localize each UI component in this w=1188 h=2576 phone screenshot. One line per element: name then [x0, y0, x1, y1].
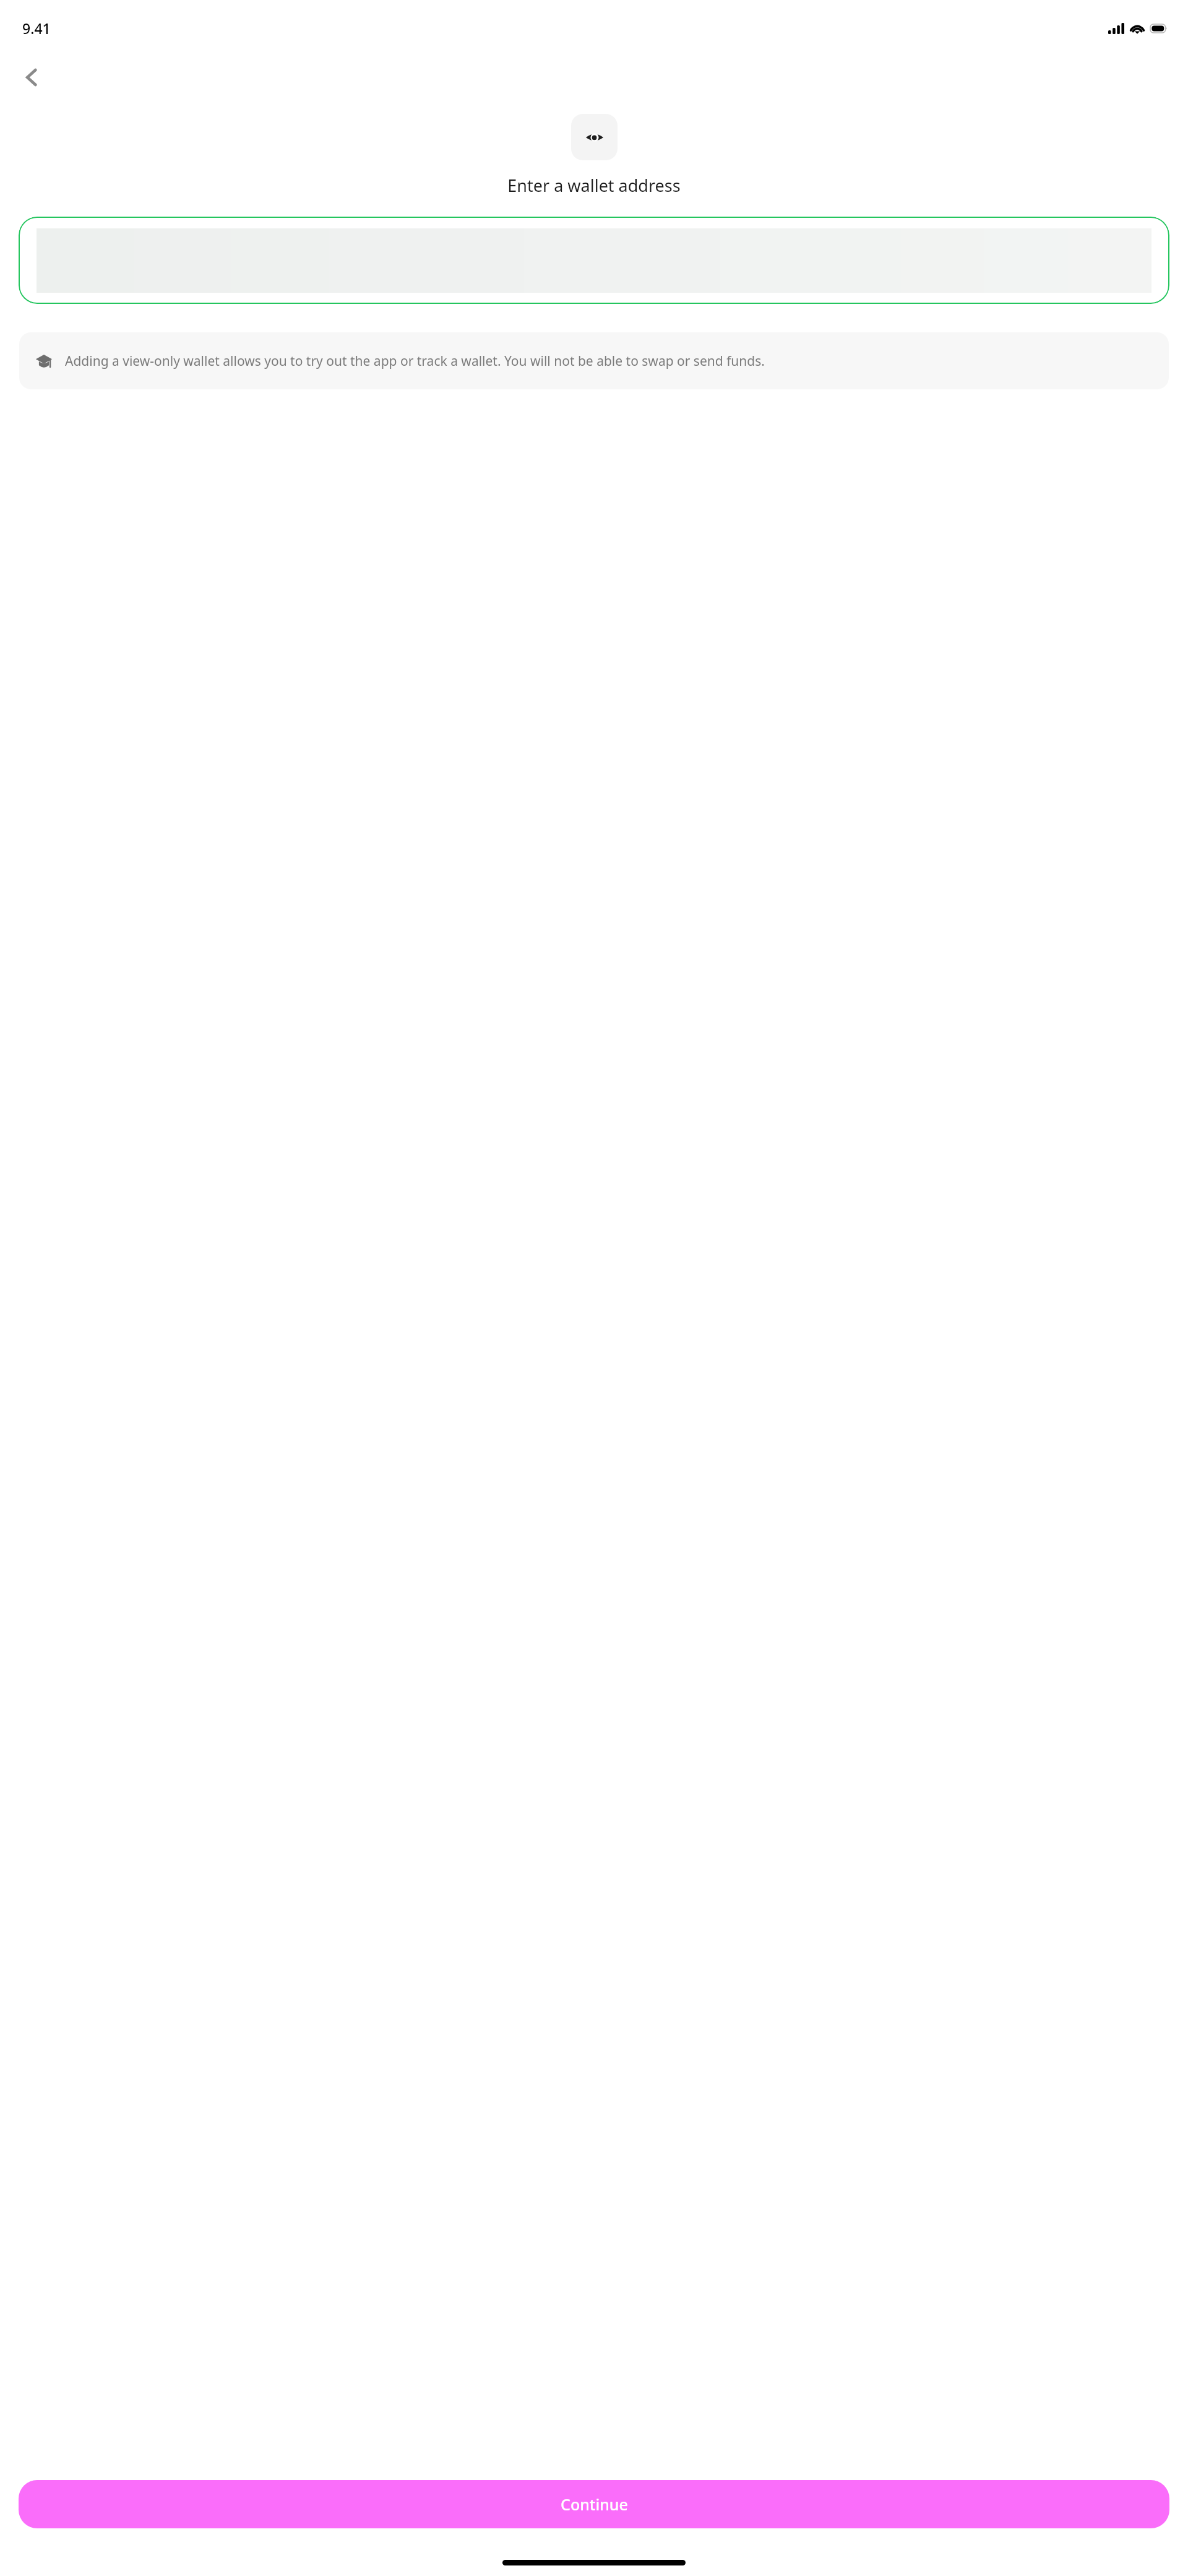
- button[interactable]: Back: [15, 60, 49, 95]
- staticText: Adding a view-only wallet allows you to …: [65, 352, 765, 370]
- staticText: Enter a wallet address: [0, 174, 1188, 197]
- button[interactable]: [19, 217, 1169, 304]
- staticText: 9.41: [22, 19, 51, 38]
- button[interactable]: Adding a view-only wallet allows you to …: [19, 332, 1169, 389]
- button[interactable]: Continue: [19, 2480, 1169, 2528]
- staticText: Continue: [561, 2494, 628, 2515]
